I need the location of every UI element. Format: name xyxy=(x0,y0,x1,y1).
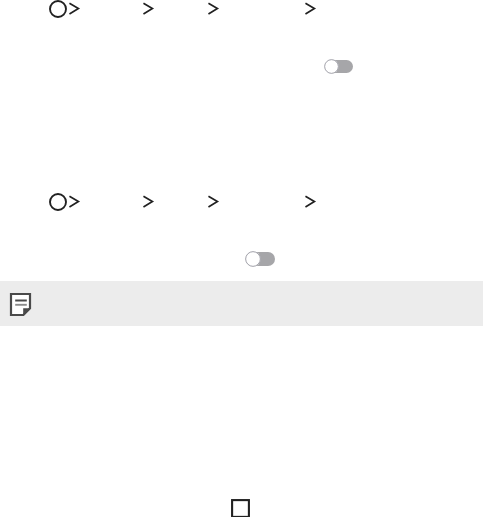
button[interactable]: Open level 4 xyxy=(305,195,316,207)
button[interactable]: Toggle option one xyxy=(325,60,353,73)
button[interactable]: Note xyxy=(0,281,483,326)
other: Note xyxy=(10,293,32,316)
button[interactable]: Open level 1 xyxy=(69,195,80,207)
button[interactable]: Open level 1 xyxy=(69,2,80,14)
button[interactable]: Open level 2 xyxy=(143,2,154,14)
button[interactable]: Home xyxy=(49,193,67,211)
button[interactable]: Open level 3 xyxy=(208,195,219,207)
button[interactable]: Checkbox, unchecked xyxy=(231,499,250,517)
button[interactable]: Open level 2 xyxy=(143,195,154,207)
button[interactable]: Home xyxy=(49,0,67,18)
button[interactable]: Open level 3 xyxy=(208,2,219,14)
button[interactable]: Toggle option two xyxy=(246,252,275,266)
button[interactable]: Open level 4 xyxy=(305,2,316,14)
